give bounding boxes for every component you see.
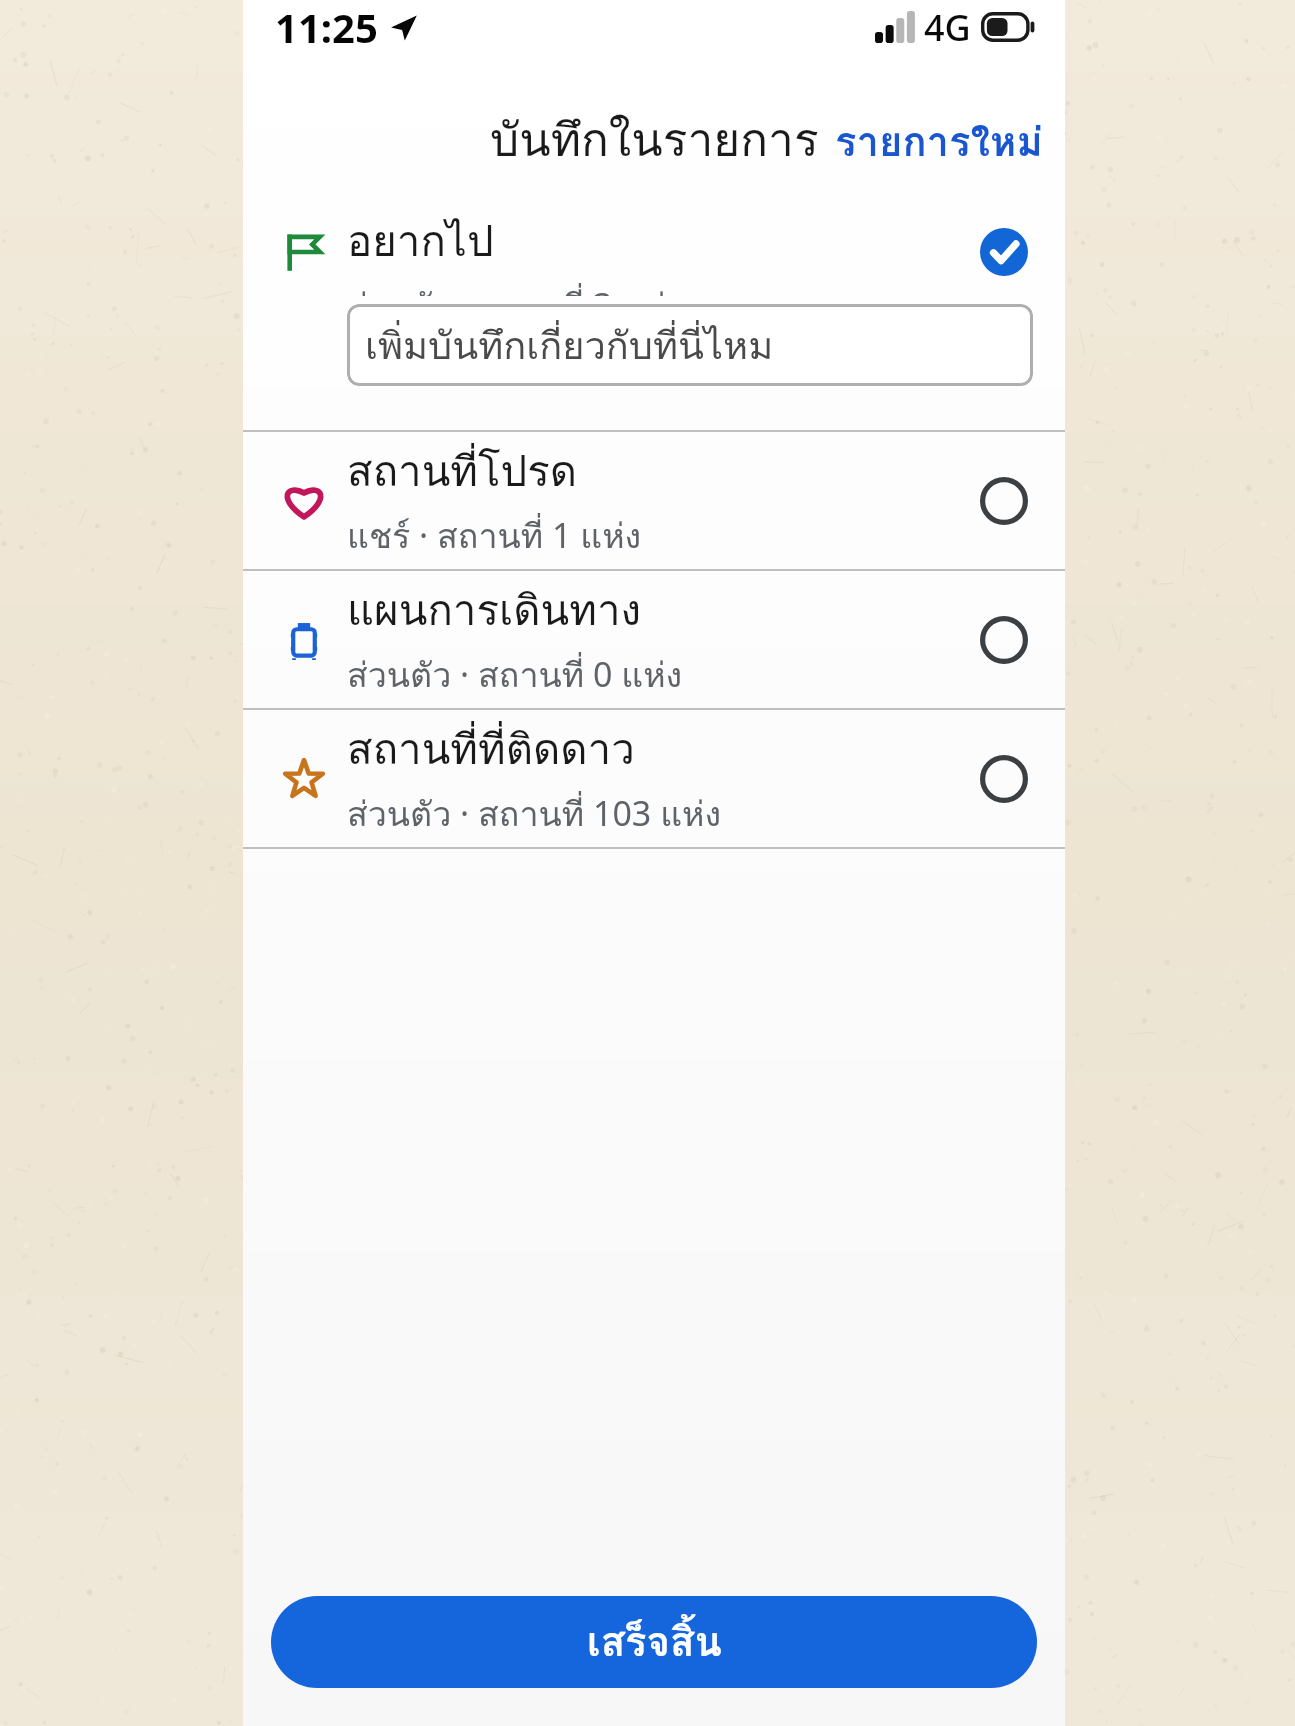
button[interactable]: สถานที่ที่ติดดาว bbox=[243, 710, 1065, 847]
button[interactable]: Select bbox=[975, 611, 1033, 669]
staticText: 11:25 bbox=[275, 0, 378, 54]
staticText: สถานที่โปรด bbox=[347, 438, 578, 505]
button[interactable]: Select bbox=[975, 750, 1033, 808]
button[interactable]: Selected bbox=[975, 223, 1033, 281]
staticText: เสร็จสิ้น bbox=[587, 1610, 722, 1674]
staticText: สถานที่ที่ติดดาว bbox=[347, 716, 635, 783]
staticText: บันทึกในรายการ bbox=[490, 103, 819, 176]
staticText: 4G bbox=[924, 3, 971, 52]
button[interactable]: เสร็จสิ้น bbox=[271, 1596, 1037, 1688]
button[interactable]: แผนการเดินทาง bbox=[243, 571, 1065, 708]
button[interactable]: อยากไป bbox=[243, 184, 1065, 296]
staticText: ส่วนตัว · สถานที่ 103 แห่ง bbox=[347, 787, 722, 841]
staticText: แชร์ · สถานที่ 1 แห่ง bbox=[347, 509, 642, 563]
staticText: เพิ่มบันทึกเกี่ยวกับที่นี่ไหม bbox=[365, 315, 774, 375]
button[interactable]: สถานที่โปรด bbox=[243, 432, 1065, 569]
staticText: ส่วนตัว · สถานที่ 3 แห่ง bbox=[347, 279, 683, 296]
staticText: รายการใหม่ bbox=[835, 110, 1043, 170]
staticText: อยากไป bbox=[347, 208, 494, 275]
staticText: ส่วนตัว · สถานที่ 0 แห่ง bbox=[347, 648, 683, 702]
button[interactable]: รายการใหม่ bbox=[813, 96, 1065, 184]
staticText: แผนการเดินทาง bbox=[347, 577, 642, 644]
button[interactable]: Select bbox=[975, 472, 1033, 530]
button[interactable]: เพิ่มบันทึกเกี่ยวกับที่นี่ไหม bbox=[347, 304, 1033, 386]
